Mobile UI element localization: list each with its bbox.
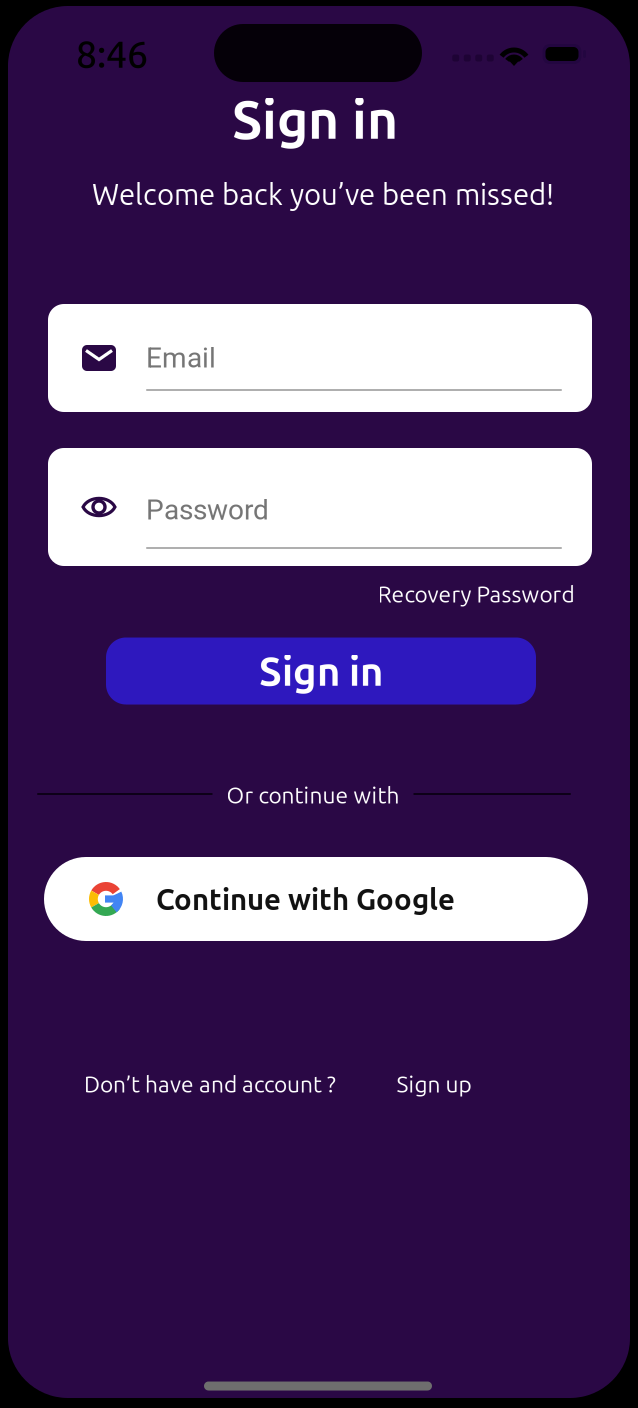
- staticText: Sign up: [396, 1071, 471, 1097]
- button[interactable]: Password: [48, 448, 592, 566]
- staticText: 8:46: [76, 33, 148, 75]
- staticText: Don’t have and account ?: [84, 1071, 336, 1097]
- staticText: Password: [146, 494, 269, 526]
- staticText: Sign in: [232, 89, 398, 149]
- button[interactable]: Recovery Password: [377, 581, 574, 607]
- button[interactable]: Continue with Google: [44, 857, 588, 941]
- button[interactable]: Email: [48, 304, 592, 412]
- staticText: Email: [146, 342, 216, 374]
- staticText: Continue with Google: [156, 883, 455, 915]
- staticText: Welcome back you’ve been missed!: [92, 178, 554, 210]
- staticText: Or continue with: [226, 782, 399, 808]
- staticText: Recovery Password: [377, 581, 574, 607]
- button[interactable]: Sign up: [396, 1071, 471, 1097]
- button[interactable]: Sign in: [106, 637, 536, 704]
- staticText: Sign in: [259, 649, 383, 693]
